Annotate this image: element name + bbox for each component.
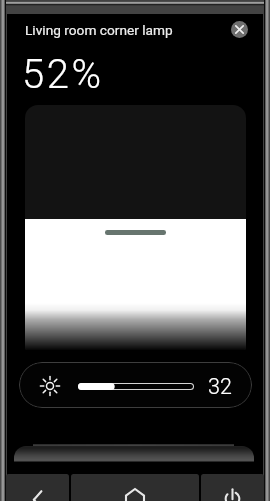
button[interactable]: Lamp brightness, 52 percent bbox=[25, 105, 246, 350]
button[interactable]: Home bbox=[71, 474, 199, 501]
button[interactable]: Back bbox=[6, 474, 69, 501]
button[interactable]: Power bbox=[201, 474, 264, 501]
staticText: 52% bbox=[22, 51, 104, 98]
staticText: Living room corner lamp bbox=[25, 22, 173, 38]
staticText: 32 bbox=[208, 374, 232, 399]
button[interactable]: Close bbox=[231, 21, 248, 38]
button[interactable]: Brightness 32 bbox=[19, 362, 252, 408]
